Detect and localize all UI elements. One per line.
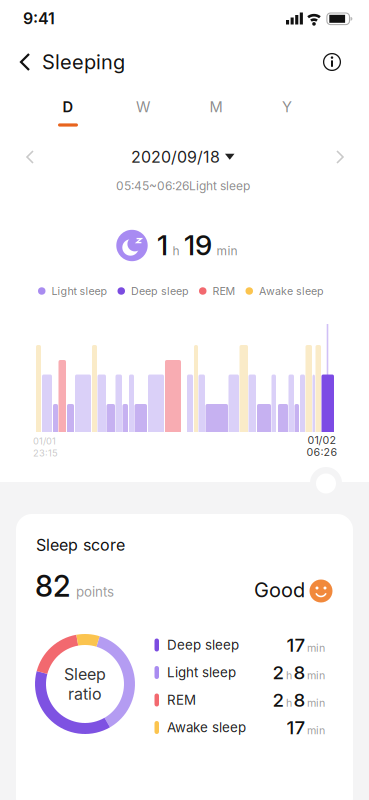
staticText: 1 (157, 228, 168, 261)
staticText: Deep sleep (167, 637, 239, 653)
staticText: min (216, 244, 237, 258)
staticText: 2 (272, 689, 284, 711)
staticText: 17 (286, 716, 305, 738)
staticText: min (307, 669, 325, 682)
staticText: 05:45~06:26Light sleep (116, 179, 250, 193)
staticText: 01/01 (33, 435, 56, 446)
staticText: Deep sleep (131, 285, 189, 297)
staticText: 17 (286, 634, 305, 656)
staticText: 06:26 (306, 446, 337, 458)
button[interactable] (319, 49, 345, 75)
staticText: 19 (184, 228, 212, 261)
staticText: min (307, 697, 325, 709)
button[interactable]: W (123, 95, 163, 119)
button[interactable] (13, 49, 39, 75)
staticText: Light sleep (167, 665, 236, 680)
staticText: 8 (293, 661, 305, 683)
staticText: Sleep score (36, 536, 125, 554)
staticText: 8 (293, 689, 305, 711)
staticText: 01/02 (307, 434, 336, 446)
staticText: 2 (272, 661, 284, 683)
staticText: h (172, 244, 179, 258)
staticText: Sleep (64, 665, 106, 683)
staticText: Sleeping (42, 50, 125, 74)
staticText: 2020/09/18 (131, 148, 220, 166)
button[interactable] (24, 149, 38, 165)
staticText: Y (282, 98, 292, 116)
staticText: M (209, 98, 222, 116)
staticText: Awake sleep (167, 720, 246, 735)
staticText: ratio (68, 684, 102, 703)
staticText: h (286, 669, 292, 682)
staticText: 82 (35, 569, 71, 603)
staticText: min (307, 724, 325, 737)
staticText: min (307, 642, 325, 654)
staticText: 23:15 (33, 447, 58, 458)
staticText: W (136, 98, 150, 116)
button[interactable]: Y (267, 95, 307, 119)
staticText: REM (212, 285, 235, 297)
staticText: Good (254, 578, 305, 602)
staticText: h (286, 697, 292, 709)
staticText: Awake sleep (259, 285, 324, 297)
button[interactable] (316, 473, 336, 493)
button[interactable] (332, 149, 346, 165)
staticText: 9:41 (23, 9, 55, 28)
button[interactable]: 2020/09/18 (131, 148, 235, 166)
staticText: D (62, 98, 73, 116)
staticText: REM (167, 692, 196, 708)
staticText: points (76, 584, 114, 600)
button[interactable]: D (48, 95, 88, 119)
staticText: Light sleep (51, 285, 107, 297)
button[interactable]: M (196, 95, 236, 119)
